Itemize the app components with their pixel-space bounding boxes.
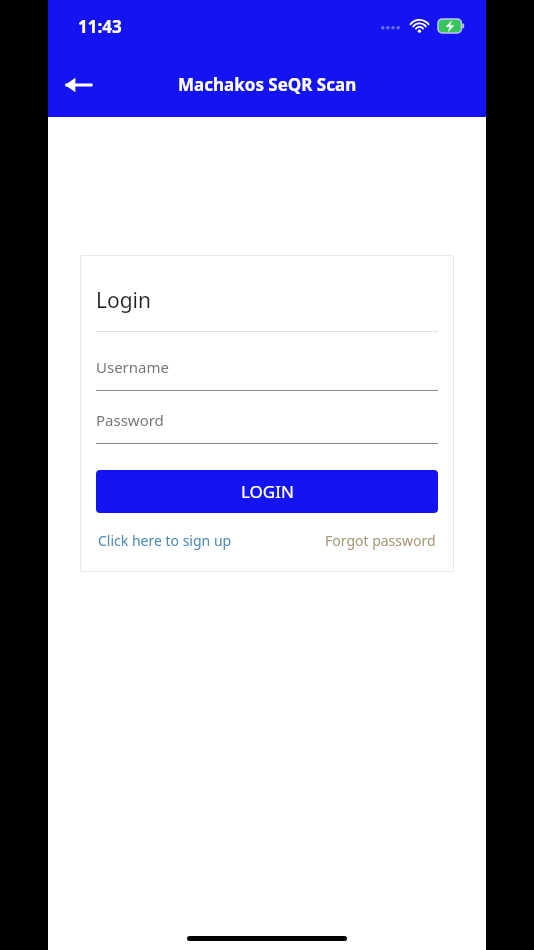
- staticText: Login: [96, 286, 152, 315]
- staticText: Machakos SeQR Scan: [178, 73, 357, 96]
- staticText: Forgot password: [325, 531, 436, 550]
- staticText: Password: [96, 410, 164, 430]
- button[interactable]: Username: [96, 357, 438, 391]
- staticText: Username: [96, 357, 169, 377]
- button[interactable]: Forgot password: [323, 528, 438, 553]
- staticText: LOGIN: [241, 480, 294, 503]
- staticText: Click here to sign up: [98, 531, 232, 550]
- staticText: 11:43: [78, 15, 122, 38]
- button[interactable]: LOGIN: [96, 470, 438, 513]
- button[interactable]: Click here to sign up: [96, 528, 234, 553]
- button[interactable]: Back: [54, 61, 102, 109]
- button[interactable]: Password: [96, 410, 438, 444]
